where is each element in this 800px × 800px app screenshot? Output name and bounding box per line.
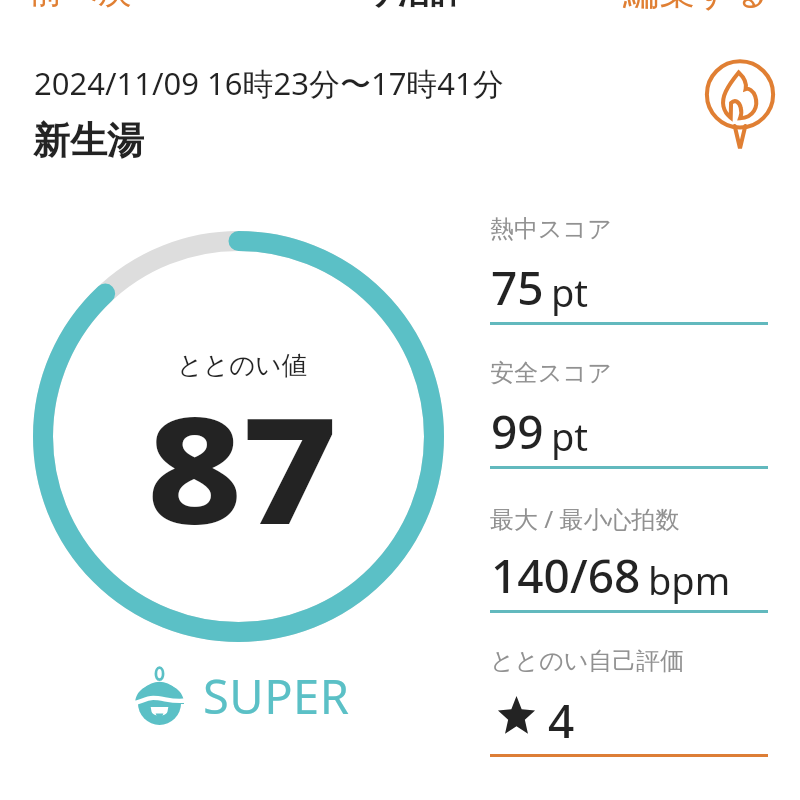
staticText: 編集する [623,0,769,14]
staticText: 前へ戻 [29,0,132,13]
staticText: 4 [548,689,575,752]
button[interactable]: SUPER [135,660,350,724]
staticText: 140/68 [491,544,641,607]
staticText: 75 [491,256,544,319]
button[interactable]: 編集する [623,0,769,14]
staticText: pt [551,266,589,318]
staticText: 87 [147,368,338,567]
staticText: 99 [491,400,544,463]
staticText: 熱中スコア [490,214,612,244]
staticText: 2024/11/09 16時23分〜17時41分 [34,62,504,104]
button[interactable]: Back [29,0,132,13]
staticText: 安全スコア [490,358,612,388]
staticText: ととのい自己評価 [490,646,685,676]
staticText: 最大 / 最小心拍数 [490,502,680,535]
staticText: サ活詳 [364,0,464,13]
staticText: SUPER [203,664,350,728]
staticText: pt [551,410,589,462]
staticText: 新生湯 [33,117,144,164]
button[interactable]: Sauna type [692,56,788,152]
staticText: ととのい値 [177,349,307,381]
staticText: bpm [648,554,731,606]
